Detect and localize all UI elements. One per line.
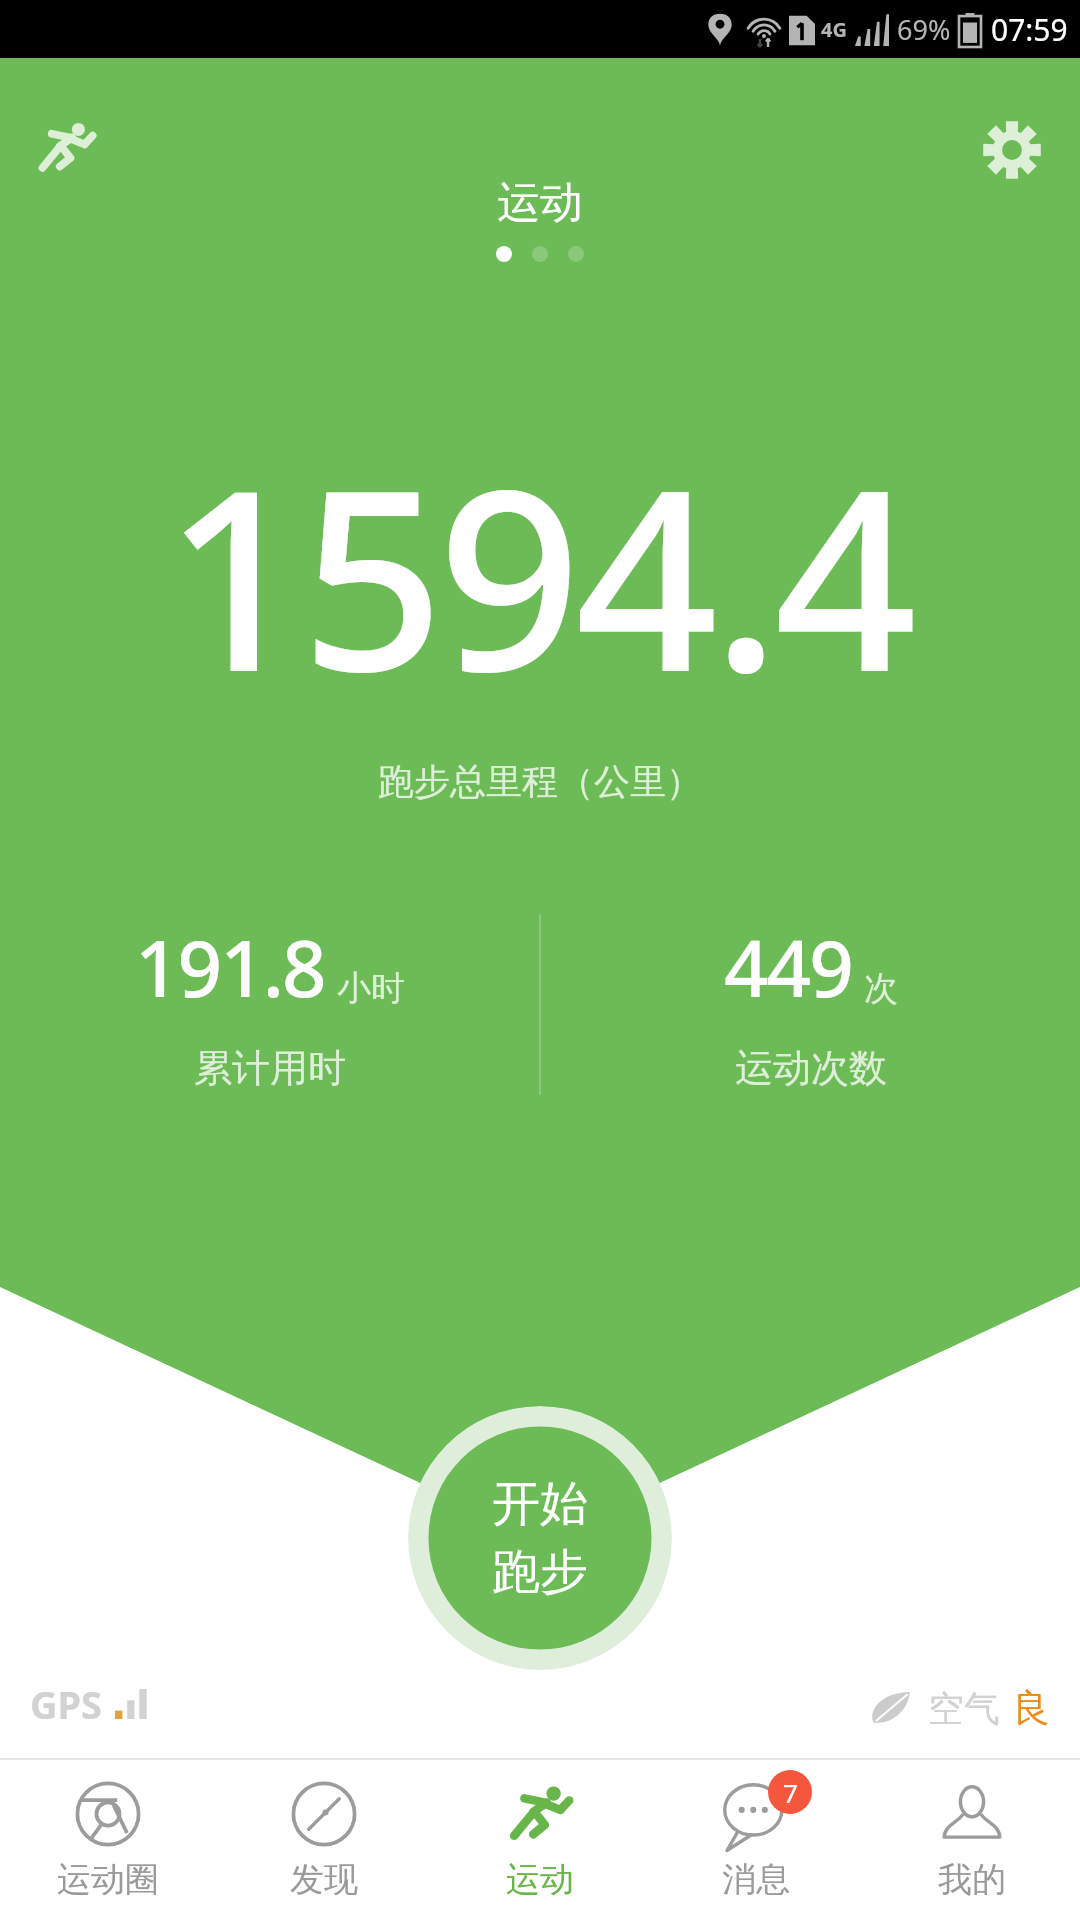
staticText: 运动圈 [57, 1858, 159, 1901]
button[interactable]: 7 [648, 1760, 864, 1920]
button[interactable]: Running history [18, 100, 114, 196]
staticText: 运动 [506, 1858, 574, 1901]
staticText: 累计用时 [194, 1044, 346, 1092]
staticText: 我的 [938, 1858, 1006, 1901]
staticText: 449 [724, 914, 852, 1020]
button[interactable]: 发现 [216, 1760, 432, 1920]
staticText: 消息 [722, 1858, 790, 1901]
staticText: 跑步总里程（公里） [378, 759, 702, 804]
staticText: 开始 [492, 1474, 588, 1534]
staticText: 次 [864, 967, 898, 1010]
staticText: 空气 [928, 1686, 1000, 1731]
staticText: 7 [783, 1775, 798, 1810]
staticText: 07:59 [991, 9, 1068, 50]
staticText: 发现 [290, 1858, 358, 1901]
button[interactable]: 运动圈 [0, 1760, 216, 1920]
staticText: 运动 [497, 176, 583, 230]
staticText: 良 [1012, 1684, 1050, 1732]
button[interactable]: 开始 [408, 1406, 672, 1670]
staticText: 跑步 [492, 1542, 588, 1602]
staticText: 191.8 [135, 914, 325, 1020]
staticText: GPS [30, 1678, 103, 1730]
staticText: 小时 [337, 967, 405, 1010]
button[interactable]: 我的 [864, 1760, 1080, 1920]
button[interactable]: 运动 [432, 1760, 648, 1920]
staticText: 69% [897, 11, 951, 48]
button[interactable]: Settings [962, 100, 1062, 200]
staticText: 4G [821, 16, 847, 43]
staticText: 运动次数 [735, 1044, 887, 1092]
staticText: 1594.4 [167, 404, 914, 745]
